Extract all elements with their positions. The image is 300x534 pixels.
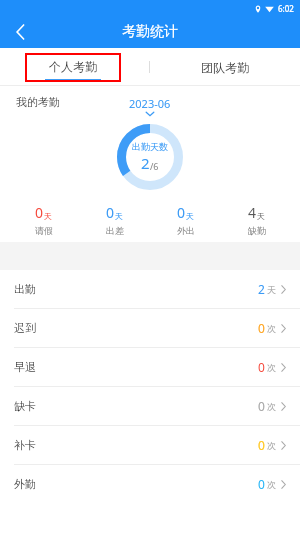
- staticText: 0: [258, 359, 265, 375]
- staticText: 0: [106, 203, 115, 222]
- button[interactable]: 0: [8, 196, 79, 242]
- staticText: 天: [115, 211, 123, 221]
- staticText: 出勤: [14, 282, 258, 296]
- staticText: 0: [177, 203, 186, 222]
- staticText: 次: [267, 323, 276, 334]
- staticText: 外出: [177, 225, 195, 236]
- staticText: 缺勤: [248, 225, 266, 236]
- staticText: 补卡: [14, 438, 258, 452]
- staticText: 出差: [106, 225, 124, 236]
- button[interactable]: 外勤: [0, 465, 300, 503]
- staticText: 考勤统计: [122, 23, 178, 41]
- staticText: 4: [248, 203, 257, 222]
- staticText: 6:02: [278, 3, 294, 14]
- staticText: 早退: [14, 360, 258, 374]
- button[interactable]: 缺卡: [0, 387, 300, 426]
- staticText: 缺卡: [14, 399, 258, 413]
- staticText: 请假: [35, 225, 53, 236]
- staticText: /6: [150, 160, 159, 172]
- button[interactable]: 团队考勤: [150, 48, 300, 86]
- staticText: 个人考勤: [49, 59, 97, 74]
- staticText: 天: [186, 211, 194, 221]
- staticText: 次: [267, 479, 276, 490]
- staticText: 0: [35, 203, 44, 222]
- button[interactable]: 0: [79, 196, 150, 242]
- button[interactable]: 迟到: [0, 309, 300, 348]
- button[interactable]: 2023-06: [129, 96, 171, 117]
- staticText: 2: [141, 153, 150, 173]
- button[interactable]: 早退: [0, 348, 300, 387]
- staticText: 天: [44, 211, 52, 221]
- button[interactable]: 4: [221, 196, 292, 242]
- staticText: 次: [267, 440, 276, 451]
- staticText: 2: [258, 281, 265, 297]
- button[interactable]: 个人考勤: [25, 53, 121, 82]
- button[interactable]: 出勤: [0, 270, 300, 309]
- staticText: 出勤天数: [132, 141, 168, 152]
- staticText: 0: [258, 320, 265, 336]
- staticText: 迟到: [14, 321, 258, 335]
- staticText: 0: [258, 437, 265, 453]
- staticText: 我的考勤: [16, 95, 60, 109]
- staticText: 天: [267, 284, 276, 295]
- button[interactable]: Back: [0, 16, 40, 48]
- staticText: 0: [258, 398, 265, 414]
- staticText: 团队考勤: [201, 60, 249, 75]
- staticText: 次: [267, 362, 276, 373]
- button[interactable]: 补卡: [0, 426, 300, 465]
- staticText: 0: [258, 476, 265, 492]
- staticText: 次: [267, 401, 276, 412]
- staticText: 外勤: [14, 477, 258, 491]
- staticText: 天: [257, 211, 265, 221]
- staticText: 2023-06: [129, 96, 171, 111]
- button[interactable]: 0: [150, 196, 221, 242]
